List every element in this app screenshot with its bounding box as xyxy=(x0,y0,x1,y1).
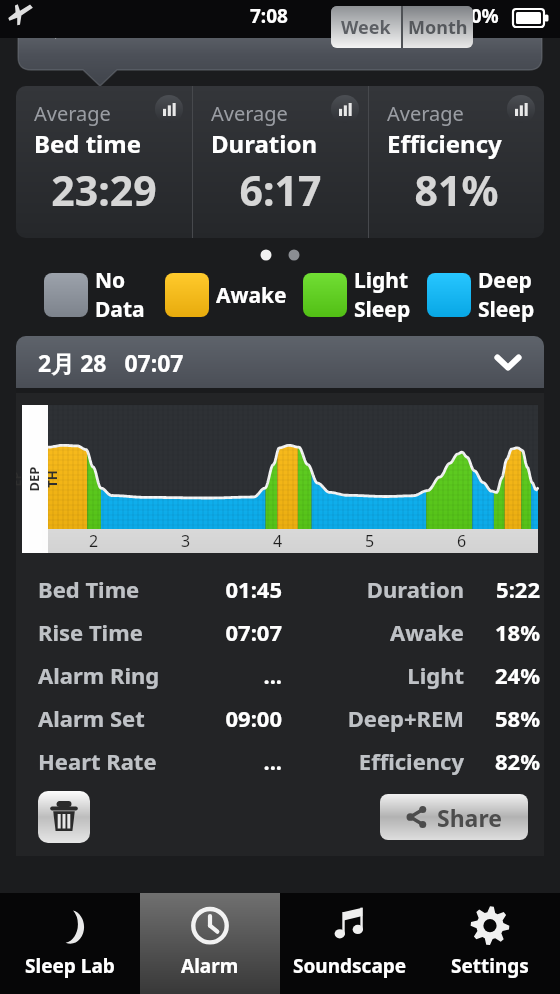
staticText: 24% xyxy=(478,660,540,690)
other: Airplane mode xyxy=(6,0,34,28)
staticText: Sleep xyxy=(354,295,411,324)
button[interactable]: Alarm xyxy=(140,893,280,994)
staticText: Share xyxy=(437,802,502,833)
button[interactable]: Soundscape xyxy=(280,893,420,994)
staticText: 18% xyxy=(478,617,540,647)
staticText: Alarm Set xyxy=(38,703,176,733)
staticText: Efficiency xyxy=(282,746,464,776)
staticText: Soundscape xyxy=(293,953,407,979)
button[interactable]: Chart Efficiency xyxy=(507,95,535,123)
staticText: Settings xyxy=(451,953,529,979)
button[interactable]: Average xyxy=(193,86,368,238)
button[interactable]: Alarm Set xyxy=(16,696,544,739)
staticText: ... xyxy=(176,746,282,776)
staticText: Alarm xyxy=(181,953,239,979)
staticText: Average xyxy=(211,100,288,127)
button[interactable]: Alarm Ring xyxy=(16,653,544,696)
staticText: 09:00 xyxy=(176,703,282,733)
staticText: Heart Rate xyxy=(38,746,176,776)
button[interactable]: Week xyxy=(331,6,401,48)
staticText: 6 xyxy=(457,530,467,552)
staticText: 2月 28 07:07 xyxy=(38,347,184,378)
staticText: Data xyxy=(95,295,145,324)
staticText: Sleep Lab xyxy=(25,953,115,979)
staticText: 2 xyxy=(89,530,99,552)
staticText: 01:45 xyxy=(176,574,282,604)
staticText: Deep+REM xyxy=(282,703,464,733)
button[interactable]: Settings xyxy=(420,893,560,994)
staticText: Light xyxy=(282,660,464,690)
staticText: 2月 21 - 27 xyxy=(38,7,168,43)
staticText: 3 xyxy=(181,530,191,552)
staticText: 07:07 xyxy=(176,617,282,647)
staticText: Duration xyxy=(211,127,317,160)
staticText: 6:17 xyxy=(201,162,360,218)
staticText: Average xyxy=(34,100,111,127)
button[interactable]: Month xyxy=(403,6,473,48)
button[interactable]: Chart Bed time xyxy=(155,95,183,123)
staticText: Month xyxy=(408,15,468,40)
staticText: 5 xyxy=(365,530,375,552)
button[interactable]: Delete xyxy=(38,791,90,843)
button[interactable]: Average xyxy=(369,86,544,238)
button[interactable]: Heart Rate xyxy=(16,739,544,782)
button[interactable]: 2月 28 07:07 xyxy=(16,336,544,388)
staticText: Awake xyxy=(282,617,464,647)
staticText: 58% xyxy=(478,703,540,733)
staticText: 81% xyxy=(377,162,536,218)
staticText: Sleep xyxy=(478,295,535,324)
staticText: Deep xyxy=(478,266,532,295)
staticText: ... xyxy=(176,660,282,690)
staticText: Bed time xyxy=(34,127,142,160)
staticText: Week xyxy=(341,15,391,40)
button[interactable]: Bed Time xyxy=(16,567,544,610)
staticText: 4 xyxy=(273,530,283,552)
staticText: Light xyxy=(354,266,409,295)
staticText: 7:08 xyxy=(250,3,288,29)
staticText: No xyxy=(95,266,126,295)
other: Collapse details xyxy=(494,348,522,376)
staticText: Rise Time xyxy=(38,617,176,647)
staticText: 23:29 xyxy=(24,162,184,218)
button[interactable]: Share xyxy=(380,794,528,840)
staticText: Alarm Ring xyxy=(38,660,176,690)
button[interactable]: Chart Duration xyxy=(331,95,359,123)
staticText: Bed Time xyxy=(38,574,176,604)
staticText: SLEEP DEPTH xyxy=(16,466,61,492)
button[interactable]: Rise Time xyxy=(16,610,544,653)
button[interactable]: Sleep Lab xyxy=(0,893,140,994)
staticText: Duration xyxy=(282,574,464,604)
staticText: 82% xyxy=(478,746,540,776)
staticText: 100% xyxy=(449,3,499,29)
staticText: Awake xyxy=(216,281,287,310)
staticText: Average xyxy=(387,100,464,127)
staticText: 5:22 xyxy=(478,574,540,604)
button[interactable]: Average xyxy=(16,86,192,238)
staticText: Efficiency xyxy=(387,127,502,160)
